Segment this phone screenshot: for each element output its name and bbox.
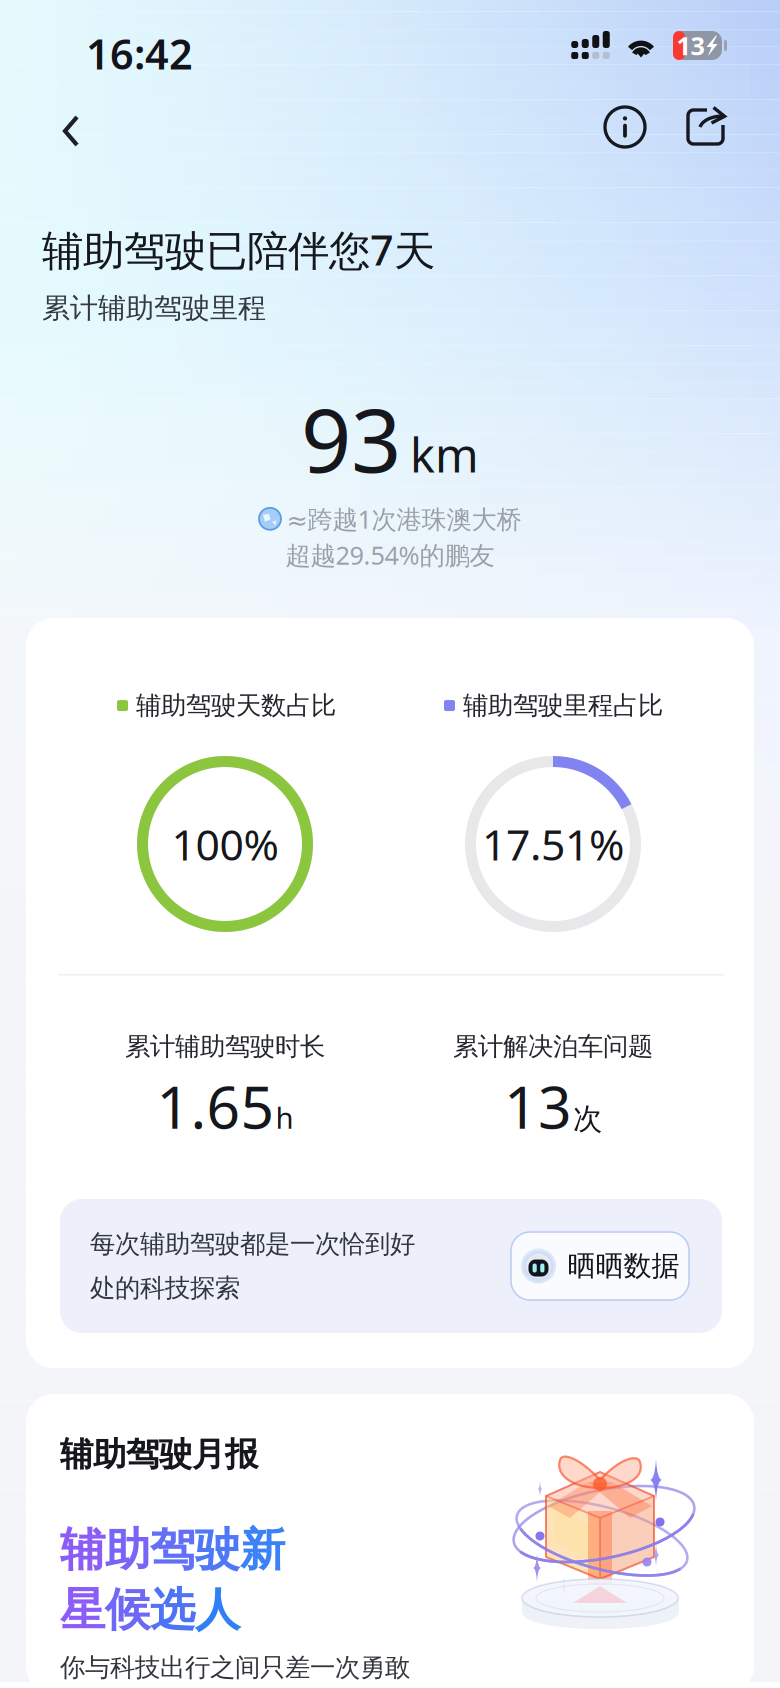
staticText: 100%	[171, 816, 278, 872]
staticText: 累计解决泊车问题	[453, 1031, 653, 1062]
button[interactable]: Share	[671, 92, 741, 162]
staticText: 晒晒数据	[567, 1249, 679, 1283]
staticText: 1.65	[156, 1067, 274, 1145]
staticText: km	[410, 423, 479, 485]
staticText: ≈跨越1次港珠澳大桥	[286, 502, 521, 536]
staticText: h	[275, 1098, 293, 1137]
staticText: 累计辅助驾驶里程	[42, 291, 266, 325]
button[interactable]: Information	[590, 92, 660, 162]
staticText: 93	[301, 380, 401, 497]
staticText: 超越29.54%的鹏友	[285, 538, 494, 572]
staticText: 候	[105, 1582, 150, 1638]
staticText: 新	[240, 1522, 285, 1578]
staticText: 13	[676, 29, 704, 62]
staticText: 星	[60, 1582, 105, 1638]
staticText: 16:42	[86, 26, 193, 81]
button[interactable]: 晒晒数据	[511, 1232, 689, 1300]
staticText: 处的科技探索	[90, 1272, 240, 1304]
staticText: 辅助驾驶月报	[60, 1434, 258, 1475]
staticText: 次	[573, 1101, 602, 1137]
staticText: 累计辅助驾驶时长	[125, 1031, 325, 1062]
staticText: 你与科技出行之间只差一次勇敢	[60, 1652, 410, 1683]
button[interactable]: Back	[36, 96, 106, 166]
staticText: 13	[504, 1067, 572, 1145]
staticText: 17.51%	[482, 816, 624, 872]
staticText: 辅助驾驶天数占比	[136, 690, 336, 721]
staticText: 辅助驾驶里程占比	[463, 690, 663, 721]
staticText: 选	[150, 1582, 195, 1638]
staticText: 辅助驾驶已陪伴您7天	[42, 222, 435, 277]
staticText: 助	[105, 1522, 150, 1578]
staticText: 每次辅助驾驶都是一次恰到好	[90, 1228, 415, 1259]
staticText: 驶	[195, 1522, 240, 1578]
staticText: 人	[195, 1582, 240, 1638]
staticText: 驾	[150, 1522, 195, 1578]
staticText: 辅	[60, 1522, 105, 1578]
